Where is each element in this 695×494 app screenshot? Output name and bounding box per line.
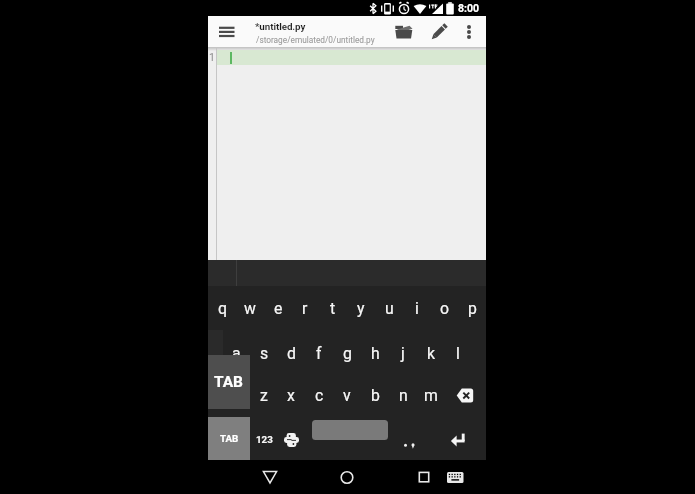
button[interactable]: h	[361, 336, 389, 370]
button[interactable]: TAB	[208, 417, 250, 460]
staticText: y	[357, 299, 365, 318]
staticText: *untitled.py	[255, 21, 306, 32]
button[interactable]	[391, 20, 415, 44]
staticText: d	[287, 344, 296, 363]
staticText: q	[218, 299, 227, 318]
button[interactable]: p	[458, 291, 486, 325]
staticText: h	[371, 344, 380, 363]
staticText: j	[401, 344, 405, 363]
button[interactable]: w	[236, 291, 264, 325]
button[interactable]: a	[222, 336, 250, 370]
button[interactable]: z	[250, 378, 278, 412]
button[interactable]	[426, 20, 450, 44]
staticText: l	[456, 344, 460, 363]
staticText: z	[260, 386, 268, 405]
button[interactable]: d	[277, 336, 305, 370]
button[interactable]	[450, 431, 476, 449]
button[interactable]: b	[361, 378, 389, 412]
button[interactable]: g	[333, 336, 361, 370]
button[interactable]	[333, 463, 361, 491]
button[interactable]: c	[305, 378, 333, 412]
staticText: TAB	[214, 373, 244, 391]
button[interactable]	[284, 433, 299, 447]
button[interactable]: j	[389, 336, 417, 370]
staticText: w	[244, 299, 256, 318]
button[interactable]: l	[444, 336, 472, 370]
button[interactable]: TAB	[208, 355, 250, 409]
button[interactable]: u	[375, 291, 403, 325]
button[interactable]	[457, 20, 481, 44]
button[interactable]	[398, 436, 430, 452]
staticText: g	[343, 344, 352, 363]
staticText: r	[302, 299, 308, 318]
button[interactable]: x	[277, 378, 305, 412]
button[interactable]	[256, 463, 284, 491]
button[interactable]	[212, 20, 236, 44]
button[interactable]: 123	[250, 430, 278, 449]
button[interactable]	[208, 47, 486, 260]
button[interactable]: m	[417, 378, 445, 412]
button[interactable]: v	[333, 378, 361, 412]
staticText: i	[415, 299, 419, 318]
staticText: 8:00	[458, 2, 480, 14]
staticText: p	[468, 299, 477, 318]
button[interactable]: n	[389, 378, 417, 412]
staticText: x	[287, 386, 295, 405]
staticText: b	[371, 386, 380, 405]
button[interactable]: o	[431, 291, 459, 325]
staticText: /storage/emulated/0/untitled.py	[256, 35, 375, 45]
button[interactable]: q	[208, 291, 236, 325]
staticText: k	[427, 344, 436, 363]
staticText: s	[260, 344, 269, 363]
staticText: e	[274, 299, 283, 318]
button[interactable]: r	[291, 291, 319, 325]
button[interactable]: s	[250, 336, 278, 370]
staticText: m	[424, 386, 438, 405]
button[interactable]: e	[264, 291, 292, 325]
button[interactable]: f	[305, 336, 333, 370]
button[interactable]	[312, 420, 388, 440]
staticText: u	[385, 299, 394, 318]
staticText: 123	[256, 434, 273, 445]
button[interactable]: i	[403, 291, 431, 325]
staticText: c	[315, 386, 324, 405]
staticText: n	[399, 386, 408, 405]
staticText: a	[232, 344, 241, 363]
button[interactable]: y	[347, 291, 375, 325]
staticText: o	[440, 299, 450, 318]
staticText: TAB	[220, 433, 239, 444]
staticText: t	[330, 299, 336, 318]
button[interactable]	[441, 463, 469, 491]
staticText: f	[316, 344, 322, 363]
button[interactable]: k	[417, 336, 445, 370]
button[interactable]	[456, 388, 476, 404]
staticText: 1	[209, 51, 215, 63]
button[interactable]: t	[319, 291, 347, 325]
staticText: v	[343, 386, 351, 405]
button[interactable]	[410, 463, 438, 491]
